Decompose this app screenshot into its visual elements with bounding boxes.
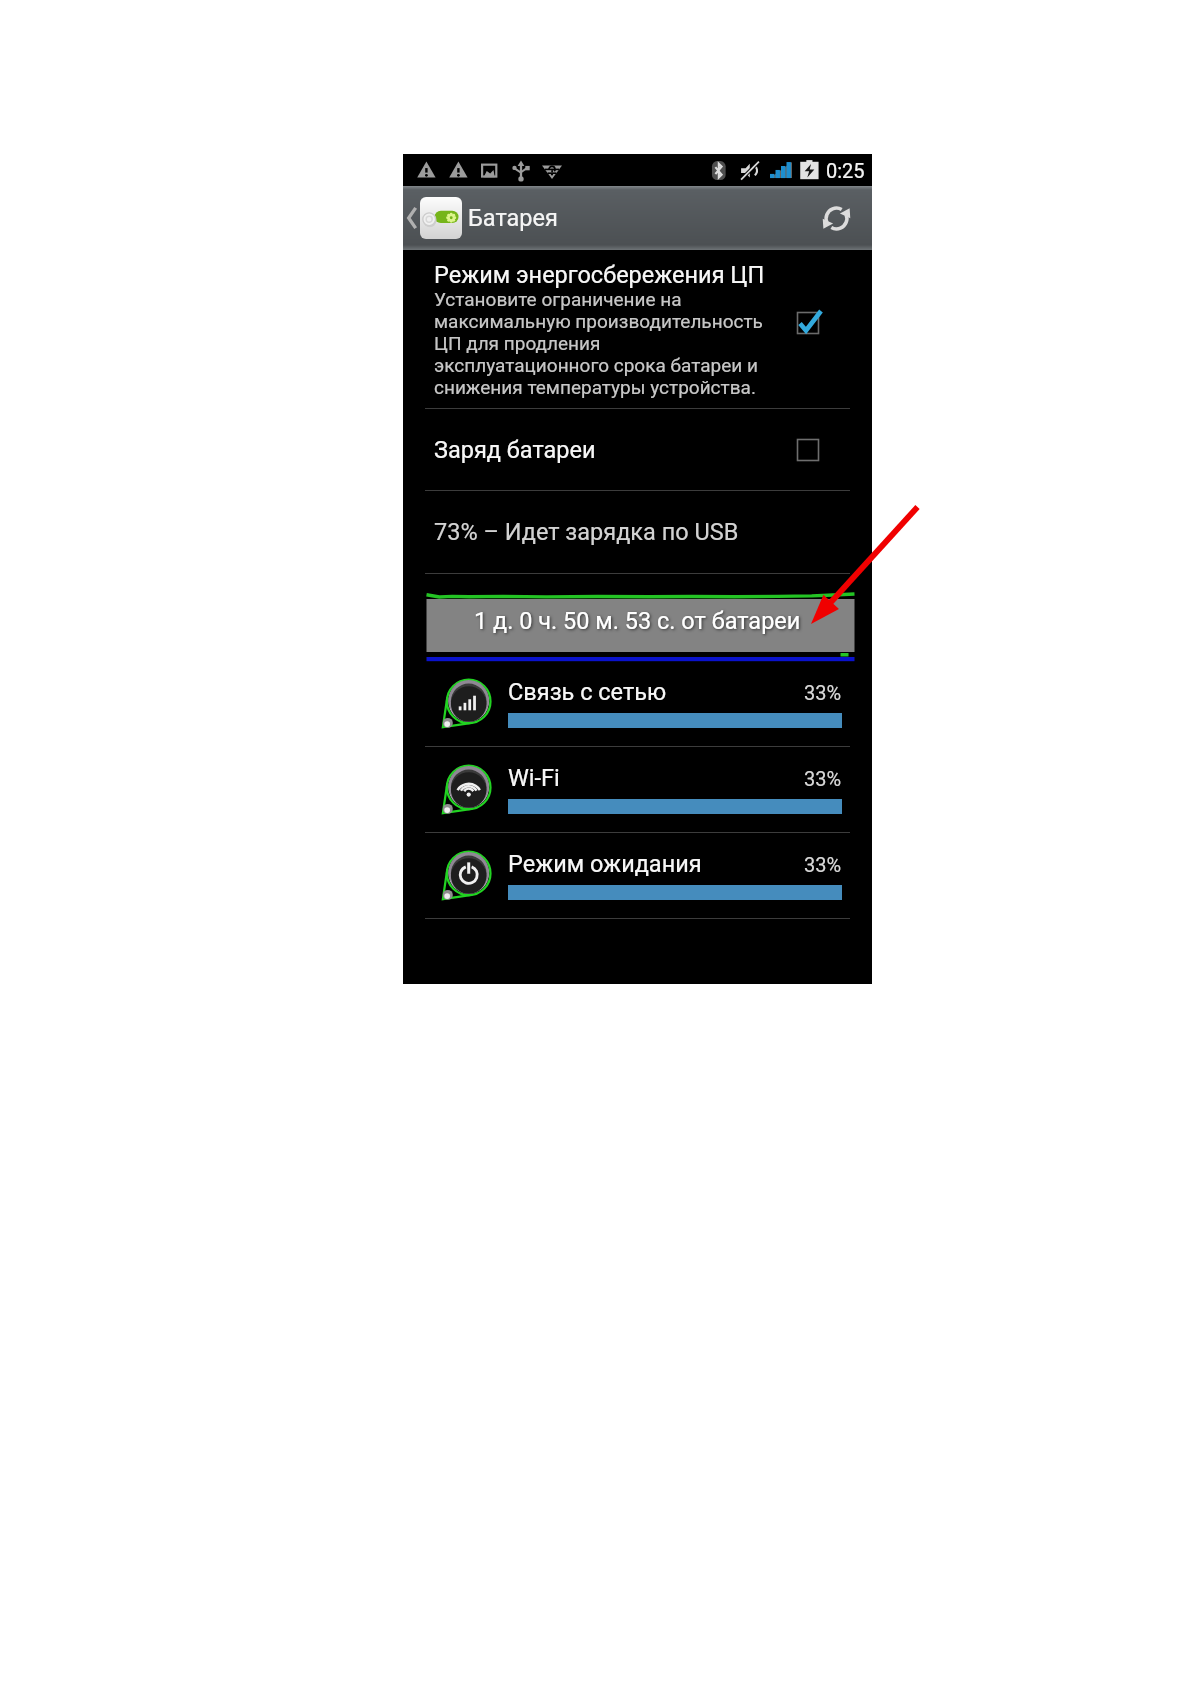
staticText: 33%: [804, 853, 842, 876]
staticText: Заряд батареи: [434, 436, 596, 464]
staticText: Связь с сетью: [508, 678, 667, 706]
button[interactable]: Связь с сетью: [403, 661, 872, 746]
button[interactable]: Режим энергосбережения ЦП: [403, 250, 872, 408]
button[interactable]: Режим ожидания: [403, 833, 872, 918]
button[interactable]: Back: [403, 186, 420, 250]
staticText: 1 д. 0 ч. 50 м. 53 с. от батареи: [474, 607, 801, 635]
button[interactable]: Back: [403, 186, 872, 250]
staticText: Режим ожидания: [508, 850, 702, 878]
staticText: Wi-Fi: [508, 764, 560, 792]
staticText: 73% – Идет зарядка по USB: [434, 518, 739, 546]
staticText: Установите ограничение на максимальную п…: [434, 289, 763, 399]
button[interactable]: Wi-Fi: [403, 747, 872, 832]
staticText: 33%: [804, 681, 842, 704]
staticText: 33%: [804, 767, 842, 790]
staticText: 0:25: [826, 159, 865, 182]
staticText: Режим энергосбережения ЦП: [434, 261, 765, 289]
button[interactable]: Checked: [793, 308, 823, 338]
button[interactable]: Refresh: [808, 190, 864, 246]
button[interactable]: Unchecked: [793, 435, 823, 465]
staticText: Батарея: [468, 204, 558, 232]
button[interactable]: Заряд батареи: [403, 409, 872, 490]
